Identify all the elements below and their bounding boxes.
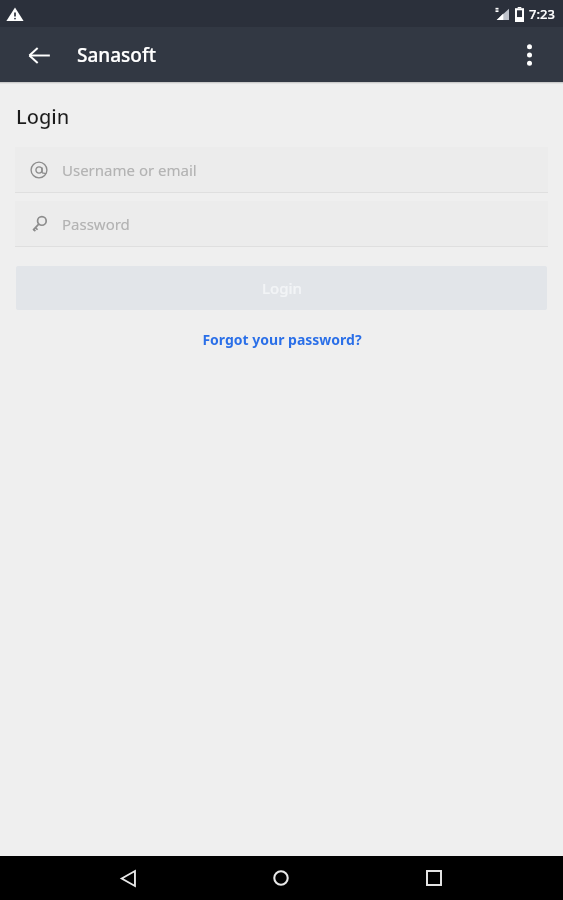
staticText: Username or email: [62, 160, 197, 180]
staticText: Sanasoft: [77, 42, 157, 68]
button[interactable]: Username or email: [15, 147, 548, 193]
button[interactable]: Recent apps: [410, 856, 458, 900]
button[interactable]: Home: [257, 856, 305, 900]
staticText: 7:23: [529, 5, 555, 23]
staticText: Login: [16, 103, 70, 130]
button[interactable]: More options: [506, 32, 552, 78]
staticText: Password: [62, 214, 130, 234]
button[interactable]: Forgot your password?: [190, 324, 374, 355]
staticText: Login: [262, 278, 302, 298]
button[interactable]: Back: [104, 856, 152, 900]
button[interactable]: Back: [15, 31, 63, 79]
button[interactable]: Password: [15, 201, 548, 247]
